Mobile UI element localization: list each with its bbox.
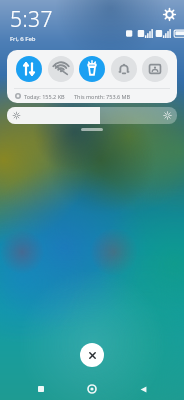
button[interactable]: Brightness: [7, 107, 177, 124]
button[interactable]: Close: [80, 343, 104, 367]
staticText: Today: 155.2 KB: [24, 93, 65, 100]
button[interactable]: Home: [82, 379, 102, 399]
button[interactable]: Today: 155.2 KB: [7, 89, 177, 103]
button[interactable]: Settings: [163, 8, 176, 21]
button[interactable]: Back: [133, 379, 153, 399]
button[interactable]: Mobile data: [16, 56, 42, 82]
button[interactable]: Cast screen: [142, 56, 168, 82]
staticText: Fri, 6 Feb: [10, 35, 36, 43]
staticText: This month: 753.6 MB: [74, 93, 131, 100]
button[interactable]: Flashlight: [79, 56, 105, 82]
button[interactable]: [81, 128, 103, 131]
button[interactable]: Recents: [31, 379, 51, 399]
staticText: 5:37: [10, 5, 54, 34]
button[interactable]: Ringer mode: [111, 56, 137, 82]
button[interactable]: Wi-Fi: [48, 56, 74, 82]
